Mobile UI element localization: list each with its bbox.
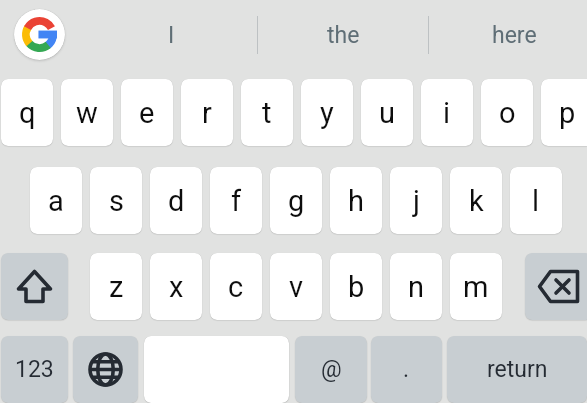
staticText: g bbox=[288, 184, 305, 218]
staticText: c bbox=[228, 270, 244, 304]
button[interactable]: Shift bbox=[1, 253, 68, 320]
button[interactable]: g bbox=[270, 167, 322, 234]
button[interactable]: a bbox=[30, 167, 82, 234]
button[interactable]: w bbox=[61, 79, 113, 146]
staticText: I bbox=[168, 22, 175, 49]
button[interactable]: d bbox=[150, 167, 202, 234]
button[interactable]: t bbox=[241, 79, 293, 146]
staticText: t bbox=[262, 96, 272, 130]
button[interactable]: Switch language bbox=[73, 336, 138, 403]
button[interactable]: return bbox=[447, 336, 587, 403]
staticText: u bbox=[379, 96, 395, 130]
button[interactable]: Backspace bbox=[525, 253, 587, 320]
button[interactable]: here bbox=[428, 0, 587, 70]
button[interactable]: c bbox=[210, 253, 262, 320]
button[interactable]: z bbox=[90, 253, 142, 320]
button[interactable]: Google Search bbox=[14, 9, 65, 60]
staticText: r bbox=[202, 96, 212, 130]
button[interactable]: e bbox=[121, 79, 173, 146]
button[interactable]: m bbox=[450, 253, 502, 320]
button[interactable]: q bbox=[1, 79, 53, 146]
staticText: here bbox=[492, 22, 537, 49]
staticText: 123 bbox=[15, 356, 54, 383]
button[interactable]: x bbox=[150, 253, 202, 320]
staticText: n bbox=[408, 270, 425, 304]
staticText: @ bbox=[321, 356, 342, 383]
button[interactable]: k bbox=[450, 167, 502, 234]
staticText: the bbox=[327, 22, 360, 49]
staticText: o bbox=[499, 96, 516, 130]
staticText: . bbox=[403, 356, 410, 383]
staticText: h bbox=[348, 184, 364, 218]
button[interactable]: r bbox=[181, 79, 233, 146]
button[interactable]: l bbox=[510, 167, 562, 234]
button[interactable]: j bbox=[390, 167, 442, 234]
staticText: v bbox=[289, 270, 304, 304]
button[interactable]: @ bbox=[295, 336, 367, 403]
staticText: m bbox=[463, 270, 489, 304]
staticText: w bbox=[76, 96, 98, 130]
staticText: x bbox=[169, 270, 184, 304]
button[interactable]: n bbox=[390, 253, 442, 320]
button[interactable]: 123 bbox=[1, 336, 68, 403]
staticText: return bbox=[487, 356, 548, 383]
button[interactable]: . bbox=[371, 336, 442, 403]
staticText: b bbox=[348, 270, 365, 304]
staticText: e bbox=[139, 96, 155, 130]
button[interactable]: y bbox=[301, 79, 353, 146]
staticText: i bbox=[443, 96, 451, 130]
button[interactable]: f bbox=[210, 167, 262, 234]
button[interactable]: u bbox=[361, 79, 413, 146]
staticText: s bbox=[109, 184, 124, 218]
staticText: z bbox=[109, 270, 124, 304]
staticText: p bbox=[559, 96, 576, 130]
button[interactable]: h bbox=[330, 167, 382, 234]
button[interactable]: o bbox=[481, 79, 533, 146]
staticText: f bbox=[231, 184, 242, 218]
button[interactable]: p bbox=[541, 79, 587, 146]
staticText: a bbox=[48, 184, 64, 218]
button[interactable]: s bbox=[90, 167, 142, 234]
button[interactable]: b bbox=[330, 253, 382, 320]
staticText: l bbox=[532, 184, 540, 218]
staticText: k bbox=[469, 184, 484, 218]
staticText: d bbox=[168, 184, 185, 218]
button[interactable]: I bbox=[85, 0, 257, 70]
button[interactable]: the bbox=[257, 0, 429, 70]
staticText: j bbox=[413, 184, 420, 218]
button[interactable]: i bbox=[421, 79, 473, 146]
button[interactable]: v bbox=[270, 253, 322, 320]
staticText: q bbox=[19, 96, 36, 130]
staticText: y bbox=[320, 96, 334, 130]
